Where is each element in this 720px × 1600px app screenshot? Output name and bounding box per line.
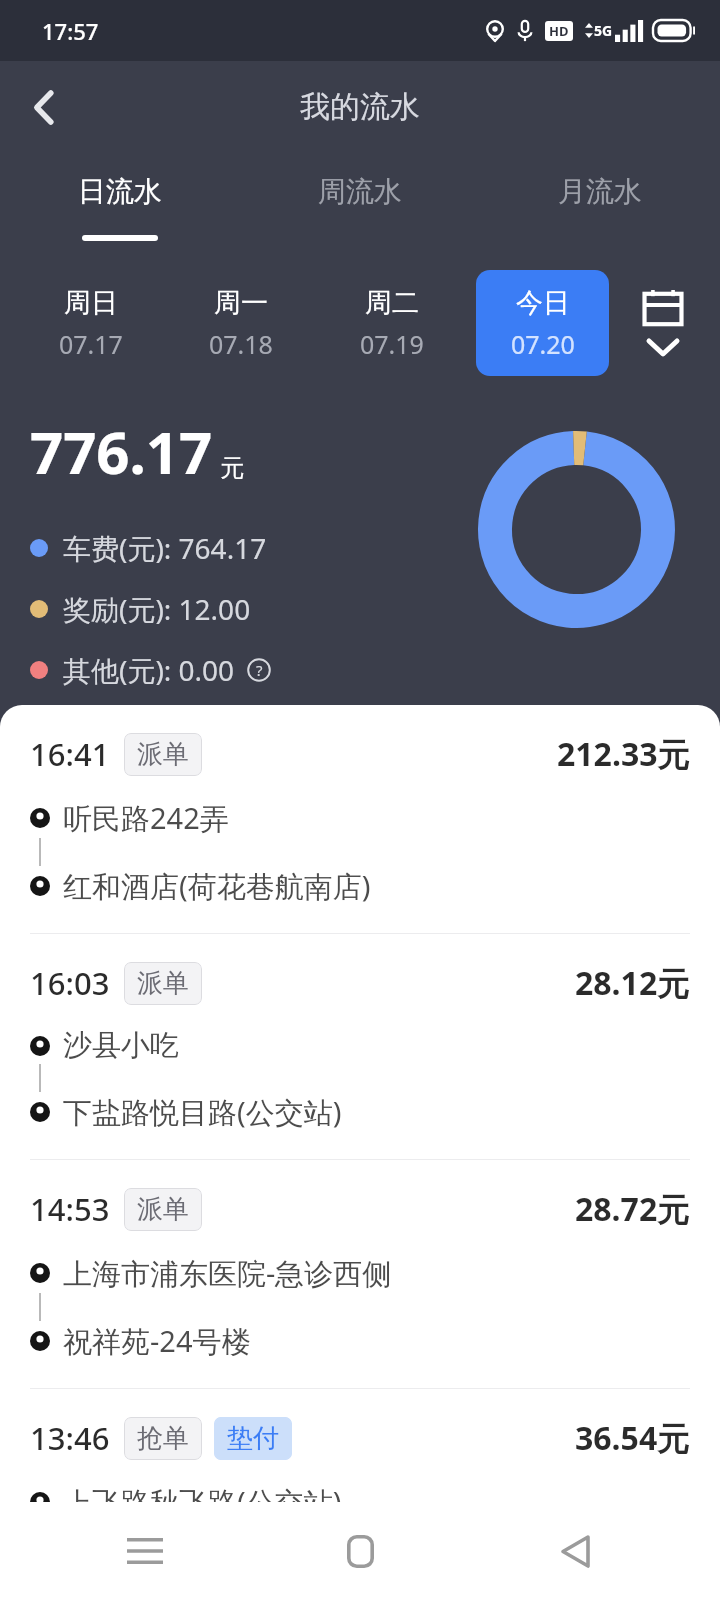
staticText: 17:57	[42, 16, 99, 46]
staticText: 派单	[137, 1193, 189, 1226]
button[interactable]: 垫付	[227, 1422, 279, 1455]
button[interactable]: 13:46	[0, 1389, 720, 1549]
staticText: 日流水	[78, 174, 162, 209]
staticText: 36.54元	[575, 1416, 690, 1460]
button[interactable]: 14:53	[0, 1160, 720, 1388]
staticText: 16:41	[30, 733, 110, 775]
staticText: 元	[220, 453, 244, 483]
button[interactable]: 抢单	[137, 1422, 189, 1455]
staticText: 红和酒店(荷花巷航南店)	[63, 866, 371, 906]
staticText: 周日	[64, 286, 118, 320]
staticText: 周流水	[318, 174, 402, 209]
staticText: 14:53	[30, 1188, 110, 1230]
button[interactable]: Info	[247, 658, 271, 682]
staticText: 07.18	[209, 327, 273, 361]
staticText: 上飞路秋飞路(公交站)	[63, 1482, 342, 1522]
button[interactable]: Choose date	[618, 245, 708, 400]
staticText: 28.12元	[575, 961, 690, 1005]
staticText: 07.20	[511, 327, 575, 361]
staticText: 07.17	[59, 327, 123, 361]
staticText: 07.19	[360, 327, 424, 361]
button[interactable]: 16:03	[0, 934, 720, 1159]
staticText: HD	[549, 22, 569, 40]
staticText: 212.33元	[557, 732, 690, 776]
staticText: 祝祥苑-24号楼	[63, 1321, 251, 1361]
staticText: 周一	[214, 286, 268, 320]
staticText: 派单	[137, 967, 189, 1000]
staticText: 5G	[594, 21, 613, 40]
staticText: 16:03	[30, 962, 110, 1004]
button[interactable]: 日流水	[0, 153, 240, 245]
staticText: 上海市浦东医院-急诊西侧	[63, 1253, 392, 1293]
button[interactable]: 月流水	[480, 153, 720, 245]
staticText: 抢单	[137, 1422, 189, 1455]
button[interactable]: 今日	[476, 270, 609, 376]
staticText: 听民路242弄	[63, 798, 229, 838]
button[interactable]: 周流水	[240, 153, 480, 245]
staticText: 沙县小吃	[63, 1027, 179, 1064]
staticText: 下盐路悦目路(公交站)	[63, 1092, 342, 1132]
staticText: 月流水	[558, 174, 642, 209]
button[interactable]: 周日	[25, 270, 157, 376]
button[interactable]: 派单	[137, 1193, 189, 1226]
button[interactable]: 派单	[137, 967, 189, 1000]
button[interactable]: Back	[16, 79, 72, 135]
staticText: 今日	[516, 286, 570, 320]
staticText: 我的流水	[300, 88, 420, 126]
staticText: 13:46	[30, 1417, 110, 1459]
button[interactable]: 周一	[175, 270, 307, 376]
staticText: 垫付	[227, 1422, 279, 1455]
staticText: ?	[256, 660, 263, 680]
staticText: 奖励(元): 12.00	[63, 590, 251, 628]
button[interactable]: 16:41	[0, 705, 720, 933]
button[interactable]: Back	[505, 1502, 645, 1600]
staticText: 28.72元	[575, 1187, 690, 1231]
staticText: 派单	[137, 738, 189, 771]
staticText: 周二	[365, 286, 419, 320]
button[interactable]: Recents	[75, 1502, 215, 1600]
staticText: 776.17	[30, 412, 213, 491]
staticText: 车费(元): 764.17	[63, 529, 267, 567]
button[interactable]: Home	[290, 1502, 430, 1600]
staticText: 其他(元): 0.00	[63, 651, 235, 689]
button[interactable]: 周二	[325, 270, 458, 376]
button[interactable]: 派单	[137, 738, 189, 771]
